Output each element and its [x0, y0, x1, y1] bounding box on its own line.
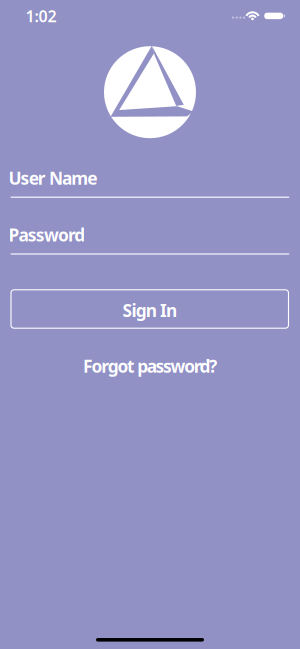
staticText: User Name — [8, 166, 97, 189]
staticText: Sign In — [122, 299, 177, 322]
button[interactable]: Forgot password? — [83, 350, 217, 381]
staticText: 1:02 — [25, 5, 56, 27]
button[interactable]: User Name — [10, 169, 290, 199]
staticText: Forgot password? — [83, 354, 217, 377]
button[interactable]: Password — [10, 225, 290, 255]
staticText: Password — [8, 223, 85, 246]
button[interactable]: Sign In — [11, 290, 288, 328]
